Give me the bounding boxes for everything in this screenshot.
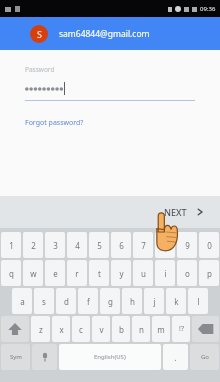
button[interactable]: c xyxy=(72,316,90,342)
button[interactable]: 3 xyxy=(45,232,65,258)
button[interactable]: p xyxy=(199,260,219,286)
button[interactable]: m xyxy=(152,316,170,342)
button[interactable]: e xyxy=(45,260,65,286)
button[interactable]: Voice input xyxy=(32,344,57,370)
button[interactable]: Sym xyxy=(1,344,30,370)
button[interactable]: S xyxy=(0,17,220,50)
staticText: h xyxy=(130,296,135,307)
staticText: p xyxy=(207,268,212,279)
staticText: a xyxy=(20,296,25,307)
staticText: m xyxy=(157,324,165,335)
button[interactable]: Go xyxy=(190,344,219,370)
staticText: 6 xyxy=(119,240,124,251)
button[interactable]: s xyxy=(34,288,54,314)
staticText: e xyxy=(53,268,58,279)
staticText: NEXT xyxy=(164,206,187,218)
staticText: 7 xyxy=(141,240,146,251)
button[interactable]: Backspace xyxy=(192,316,219,342)
button[interactable]: y xyxy=(111,260,131,286)
staticText: 2 xyxy=(31,240,36,251)
button[interactable]: t xyxy=(89,260,109,286)
staticText: 4 xyxy=(75,240,80,251)
staticText: . xyxy=(174,352,177,363)
staticText: !? xyxy=(179,324,184,334)
staticText: 09:36 xyxy=(200,5,216,13)
staticText: f xyxy=(87,296,90,307)
staticText: n xyxy=(139,324,144,335)
button[interactable]: x xyxy=(52,316,70,342)
button[interactable]: d xyxy=(56,288,76,314)
button[interactable]: v xyxy=(92,316,110,342)
button[interactable]: Shift xyxy=(1,316,29,342)
staticText: k xyxy=(174,296,179,307)
button[interactable]: 2 xyxy=(23,232,43,258)
staticText: t xyxy=(98,268,101,279)
button[interactable]: English(US) xyxy=(59,344,161,370)
staticText: 5 xyxy=(97,240,102,251)
button[interactable]: f xyxy=(78,288,98,314)
button[interactable]: Forgot password? xyxy=(25,116,84,130)
button[interactable]: g xyxy=(100,288,120,314)
staticText: l xyxy=(197,296,200,307)
button[interactable]: l xyxy=(188,288,208,314)
staticText: u xyxy=(141,268,146,279)
staticText: q xyxy=(9,268,14,279)
staticText: w xyxy=(30,268,37,279)
staticText: sam64844@gmail.com xyxy=(59,28,150,40)
staticText: y xyxy=(119,268,124,279)
button[interactable]: z xyxy=(31,316,50,342)
button[interactable]: u xyxy=(133,260,153,286)
staticText: 0 xyxy=(207,240,212,251)
staticText: i xyxy=(164,268,167,279)
button[interactable]: r xyxy=(67,260,87,286)
button[interactable]: 6 xyxy=(111,232,131,258)
staticText: b xyxy=(119,324,124,335)
button[interactable]: b xyxy=(112,316,130,342)
staticText: x xyxy=(59,324,64,335)
staticText: 8 xyxy=(163,240,168,251)
staticText: English(US) xyxy=(94,353,126,361)
button[interactable]: 8 xyxy=(155,232,175,258)
staticText: s xyxy=(42,296,46,307)
staticText: Forgot password? xyxy=(25,118,84,128)
button[interactable]: o xyxy=(177,260,197,286)
button[interactable]: q xyxy=(1,260,21,286)
button[interactable]: w xyxy=(23,260,43,286)
button[interactable]: k xyxy=(166,288,186,314)
staticText: g xyxy=(108,296,113,307)
button[interactable]: 5 xyxy=(89,232,109,258)
staticText: r xyxy=(75,268,79,279)
staticText: z xyxy=(39,324,43,335)
button[interactable]: j xyxy=(144,288,164,314)
staticText: 1 xyxy=(9,240,14,251)
button[interactable]: !? xyxy=(172,316,190,342)
staticText: o xyxy=(185,268,190,279)
button[interactable]: . xyxy=(163,344,188,370)
button[interactable]: 7 xyxy=(133,232,153,258)
staticText: Go xyxy=(201,353,209,361)
staticText: j xyxy=(153,296,156,307)
staticText: 3 xyxy=(53,240,58,251)
button[interactable]: a xyxy=(12,288,32,314)
staticText: c xyxy=(79,324,83,335)
staticText: S xyxy=(37,28,42,40)
button[interactable]: 4 xyxy=(67,232,87,258)
staticText: d xyxy=(64,296,69,307)
button[interactable]: 1 xyxy=(1,232,21,258)
button[interactable]: i xyxy=(155,260,175,286)
button[interactable]: 9 xyxy=(177,232,197,258)
button[interactable]: h xyxy=(122,288,142,314)
staticText: v xyxy=(99,324,104,335)
staticText: Sym xyxy=(10,353,22,361)
button[interactable]: 0 xyxy=(199,232,219,258)
staticText: 9 xyxy=(185,240,190,251)
button[interactable]: NEXT xyxy=(160,201,208,223)
staticText: Password xyxy=(25,65,55,74)
button[interactable]: n xyxy=(132,316,150,342)
